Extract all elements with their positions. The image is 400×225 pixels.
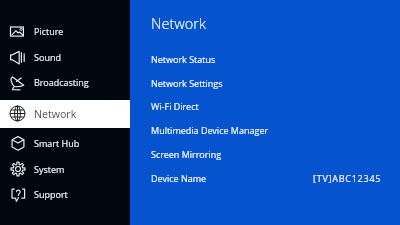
staticText: Picture: [34, 25, 64, 37]
staticText: Network: [151, 14, 206, 34]
button[interactable]: Network Status: [130, 47, 400, 71]
button[interactable]: System: [0, 156, 130, 182]
staticText: System: [34, 163, 65, 175]
staticText: Sound: [34, 51, 61, 63]
button[interactable]: Support: [0, 181, 130, 207]
button[interactable]: Network: [151, 14, 206, 34]
staticText: Network Status: [151, 53, 216, 65]
button[interactable]: Broadcasting: [0, 69, 130, 95]
button[interactable]: Network: [0, 100, 130, 128]
button[interactable]: Picture: [0, 18, 130, 44]
button[interactable]: Wi-Fi Direct: [130, 94, 400, 118]
staticText: [TV]ABC12345: [313, 172, 382, 184]
staticText: Network Settings: [151, 77, 223, 89]
staticText: Broadcasting: [34, 76, 89, 88]
button[interactable]: Multimedia Device Manager: [130, 118, 400, 142]
staticText: Smart Hub: [34, 137, 80, 149]
staticText: Multimedia Device Manager: [151, 124, 269, 136]
button[interactable]: Sound: [0, 44, 130, 70]
staticText: Support: [34, 188, 68, 200]
button[interactable]: Network Settings: [130, 71, 400, 95]
button[interactable]: Screen Mirroring: [130, 142, 400, 166]
staticText: Wi-Fi Direct: [151, 100, 199, 112]
button[interactable]: Smart Hub: [0, 130, 130, 156]
staticText: Network: [34, 107, 77, 121]
staticText: Device Name: [151, 172, 207, 184]
staticText: Screen Mirroring: [151, 148, 222, 160]
button[interactable]: Device Name: [130, 166, 400, 190]
